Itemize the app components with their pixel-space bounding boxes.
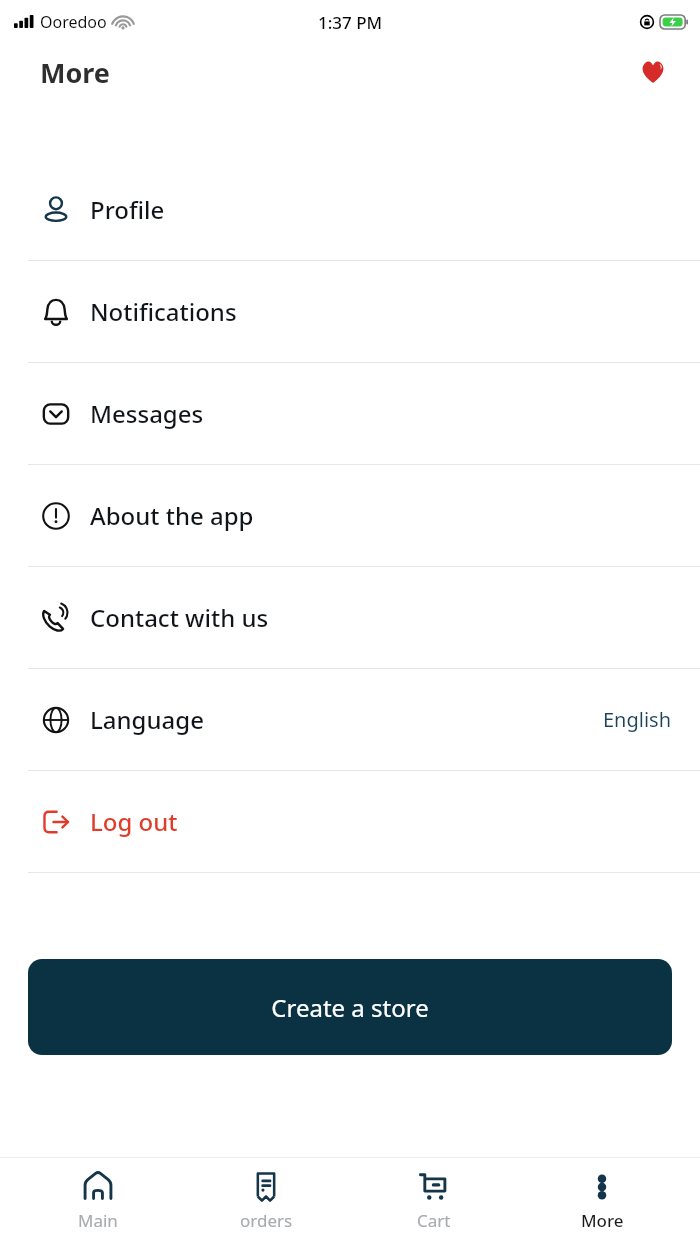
staticText: orders — [240, 1209, 293, 1232]
staticText: Messages — [90, 397, 204, 430]
staticText: Contact with us — [90, 601, 269, 634]
button[interactable]: Language — [0, 669, 700, 770]
staticText: Main — [78, 1209, 118, 1232]
button[interactable]: Log out — [0, 771, 700, 872]
staticText: 1:37 PM — [318, 11, 383, 34]
staticText: Profile — [90, 193, 165, 226]
staticText: Cart — [417, 1209, 451, 1232]
staticText: English — [603, 706, 672, 733]
staticText: Language — [90, 703, 204, 736]
button[interactable]: Create a store — [28, 959, 672, 1055]
staticText: Ooredoo — [40, 11, 107, 33]
button[interactable]: Profile — [0, 159, 700, 260]
staticText: Create a store — [271, 991, 429, 1024]
button[interactable]: More — [532, 1164, 672, 1238]
staticText: About the app — [90, 499, 254, 532]
staticText: More — [40, 54, 110, 91]
staticText: Log out — [90, 805, 178, 838]
button[interactable]: Cart — [364, 1164, 504, 1238]
button[interactable]: Main — [28, 1164, 168, 1238]
button[interactable]: orders — [196, 1164, 336, 1238]
button[interactable]: Contact with us — [0, 567, 700, 668]
staticText: Notifications — [90, 295, 237, 328]
button[interactable]: Notifications — [0, 261, 700, 362]
button[interactable]: Favorites — [634, 53, 672, 91]
button[interactable]: Messages — [0, 363, 700, 464]
button[interactable]: About the app — [0, 465, 700, 566]
staticText: More — [581, 1209, 624, 1232]
